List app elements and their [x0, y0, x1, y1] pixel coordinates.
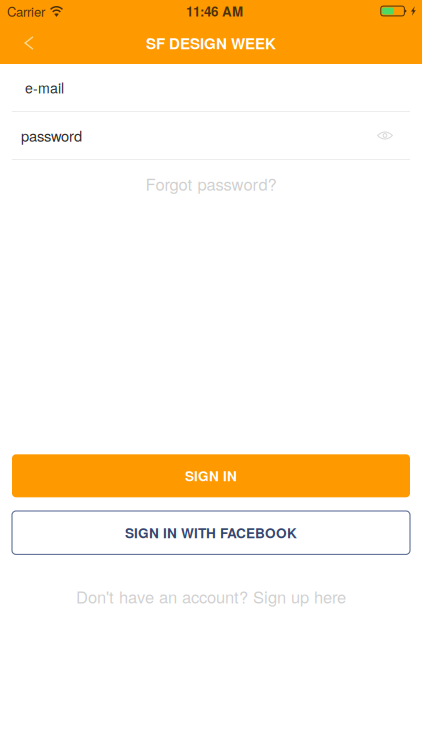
button[interactable]: SIGN IN [12, 454, 410, 497]
staticText: Don't have an account? Sign up here [76, 585, 346, 608]
button[interactable]: Forgot password? [0, 160, 422, 207]
staticText: SIGN IN [185, 466, 237, 486]
staticText: Forgot password? [145, 172, 276, 195]
button[interactable]: Back [7, 22, 51, 64]
staticText: Carrier [7, 2, 45, 20]
staticText: password [21, 125, 82, 146]
button[interactable]: SIGN IN WITH FACEBOOK [12, 511, 410, 554]
staticText: SF DESIGN WEEK [146, 32, 276, 54]
staticText: 11:46 AM [186, 1, 243, 21]
staticText: SIGN IN WITH FACEBOOK [125, 523, 297, 542]
staticText: e-mail [25, 77, 64, 98]
button[interactable]: Don't have an account? Sign up here [0, 587, 422, 605]
button[interactable]: Show password [363, 113, 407, 157]
